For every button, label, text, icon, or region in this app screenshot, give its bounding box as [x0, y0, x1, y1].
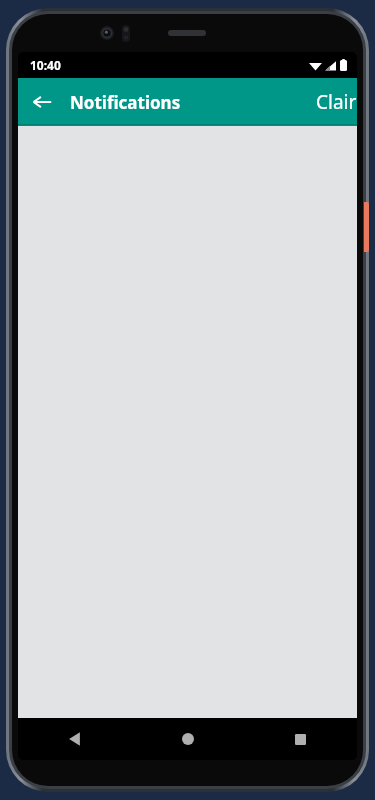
staticText: Notifications: [70, 91, 181, 114]
button[interactable]: Back: [18, 718, 131, 760]
button[interactable]: Recent apps: [244, 718, 357, 760]
staticText: Clair: [316, 89, 357, 115]
button[interactable]: Back: [18, 78, 66, 126]
staticText: 10:40: [30, 57, 61, 73]
button[interactable]: Clair: [316, 89, 357, 115]
button[interactable]: Home: [131, 718, 244, 760]
